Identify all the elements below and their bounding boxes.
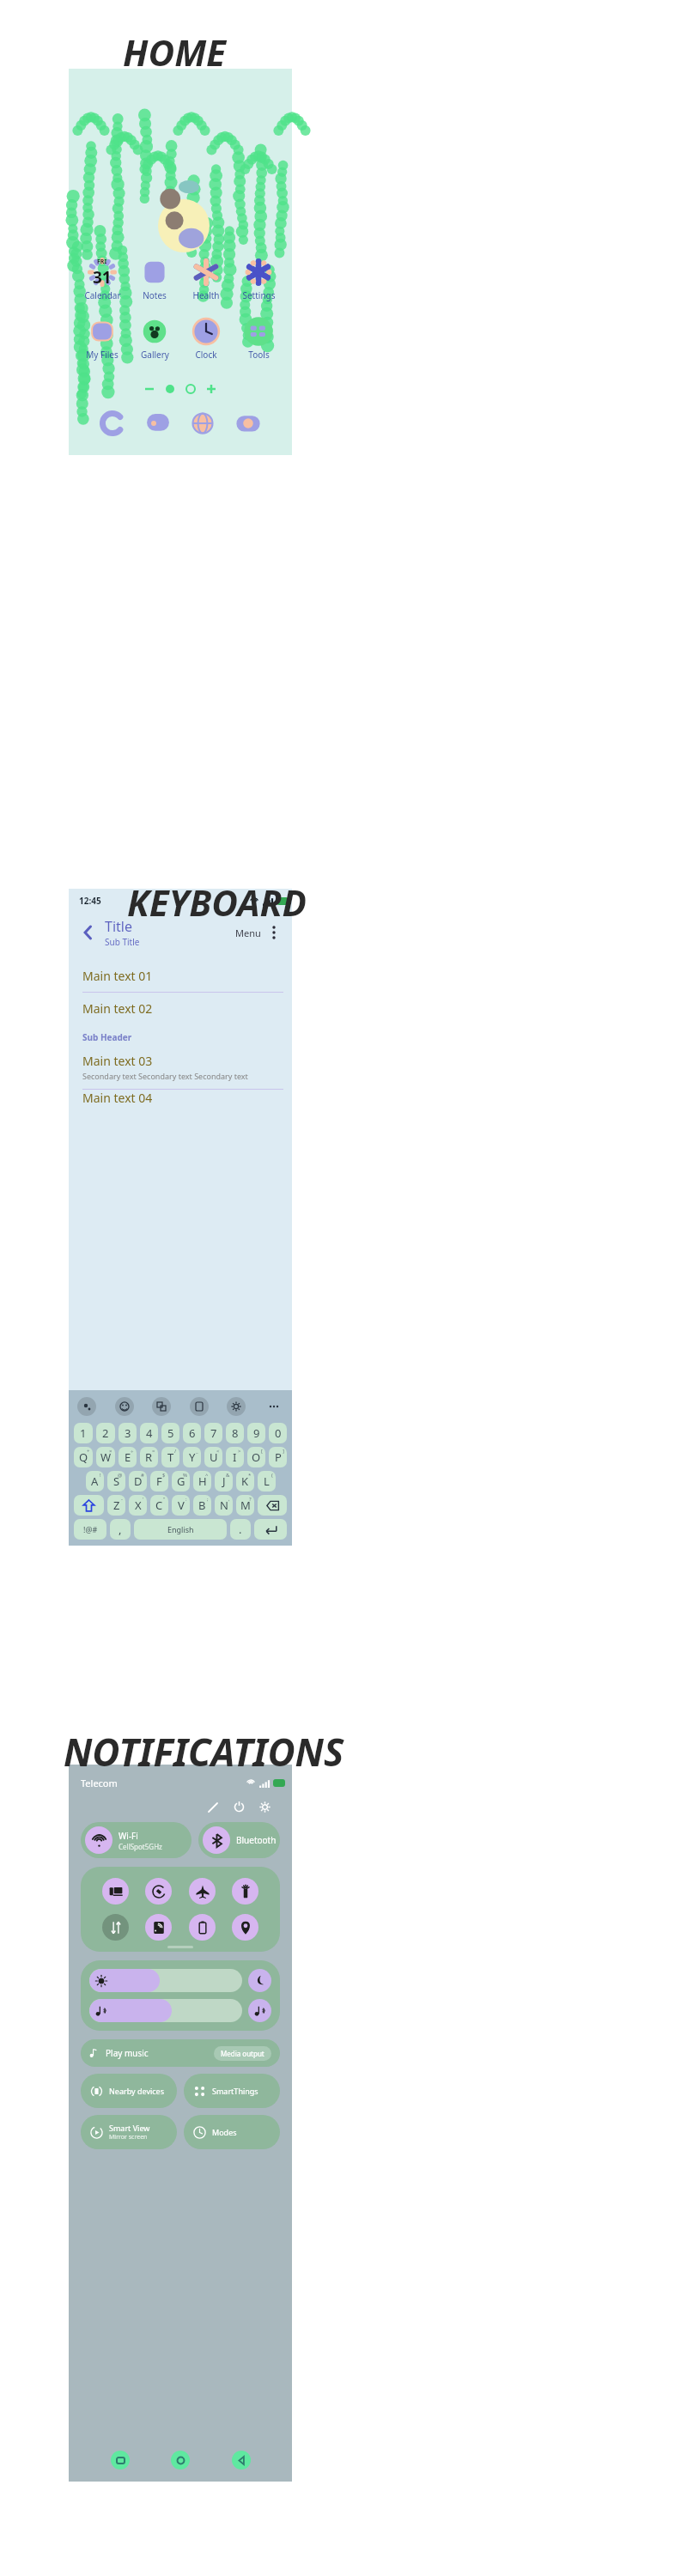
- button[interactable]: <: [204, 1447, 222, 1467]
- button[interactable]: %: [172, 1471, 190, 1492]
- button[interactable]: more: [264, 1397, 283, 1416]
- button[interactable]: [: [247, 1447, 265, 1467]
- staticText: Tools: [248, 349, 270, 361]
- staticText: 2: [102, 1425, 109, 1441]
- button[interactable]: 2: [96, 1423, 115, 1443]
- button[interactable]: 5: [161, 1423, 179, 1443]
- button[interactable]: Back: [232, 2451, 251, 2470]
- button[interactable]: Nearby devices: [81, 2074, 177, 2108]
- button[interactable]: devices: [102, 1878, 129, 1905]
- button[interactable]: Edit: [203, 1796, 223, 1817]
- button[interactable]: /: [161, 1447, 179, 1467]
- button[interactable]: Main text 03: [69, 1045, 292, 1090]
- button[interactable]: 4: [140, 1423, 158, 1443]
- button[interactable]: translate: [152, 1397, 171, 1416]
- button[interactable]: 6: [183, 1423, 201, 1443]
- button[interactable]: 1: [74, 1423, 93, 1443]
- button[interactable]: Browser: [188, 409, 217, 438]
- button[interactable]: rotate: [145, 1878, 172, 1905]
- button[interactable]: =: [140, 1447, 158, 1467]
- staticText: Clock: [195, 349, 217, 361]
- button[interactable]: Health: [181, 258, 231, 301]
- button[interactable]: hotspot: [145, 1914, 172, 1941]
- button[interactable]: data: [102, 1914, 129, 1941]
- button[interactable]: volume: [89, 1999, 242, 2022]
- button[interactable]: &: [215, 1471, 233, 1492]
- button[interactable]: Power: [228, 1796, 249, 1817]
- button[interactable]: Recents: [111, 2451, 130, 2470]
- button[interactable]: -: [107, 1495, 125, 1516]
- button[interactable]: Clock: [181, 317, 231, 361]
- staticText: 31: [93, 266, 112, 287]
- button[interactable]: +: [74, 1447, 93, 1467]
- button[interactable]: Smart View: [81, 2115, 177, 2149]
- button[interactable]: 0: [269, 1423, 287, 1443]
- button[interactable]: (: [258, 1471, 276, 1492]
- button[interactable]: !: [86, 1471, 104, 1492]
- button[interactable]: Main text 01: [69, 960, 292, 993]
- button[interactable]: backspace: [258, 1495, 287, 1516]
- button[interactable]: ?: [236, 1495, 254, 1516]
- button[interactable]: ^: [193, 1471, 211, 1492]
- button[interactable]: shift: [74, 1495, 104, 1516]
- button[interactable]: Messages: [143, 409, 173, 438]
- staticText: 8: [232, 1425, 239, 1441]
- button[interactable]: @: [107, 1471, 125, 1492]
- button[interactable]: Menu: [232, 923, 264, 943]
- button[interactable]: 3: [119, 1423, 137, 1443]
- button[interactable]: Back: [77, 921, 100, 944]
- button[interactable]: Phone: [98, 409, 127, 438]
- staticText: O: [252, 1449, 261, 1465]
- button[interactable]: #: [129, 1471, 147, 1492]
- button[interactable]: 8: [226, 1423, 244, 1443]
- button[interactable]: battery: [189, 1914, 216, 1941]
- button[interactable]: Settings: [254, 1796, 275, 1817]
- button[interactable]: Media output: [214, 2046, 271, 2061]
- button[interactable]: $: [150, 1471, 168, 1492]
- button[interactable]: >: [226, 1447, 244, 1467]
- button[interactable]: Camera: [234, 409, 263, 438]
- button[interactable]: sparkle: [77, 1397, 96, 1416]
- button[interactable]: ,: [110, 1519, 131, 1540]
- button[interactable]: settings: [227, 1397, 246, 1416]
- button[interactable]: sound: [248, 1999, 271, 2022]
- button[interactable]: emoji: [115, 1397, 134, 1416]
- button[interactable]: ÷: [119, 1447, 137, 1467]
- button[interactable]: Main text 02: [69, 993, 292, 1024]
- button[interactable]: Play music: [81, 2039, 280, 2067]
- button[interactable]: SmartThings: [184, 2074, 280, 2108]
- button[interactable]: Gallery: [130, 317, 179, 361]
- button[interactable]: Bluetooth: [198, 1822, 280, 1858]
- button[interactable]: Wi-Fi: [81, 1822, 192, 1858]
- button[interactable]: .: [230, 1519, 251, 1540]
- button[interactable]: ": [150, 1495, 168, 1516]
- button[interactable]: flash: [232, 1878, 258, 1905]
- button[interactable]: clipboard: [190, 1397, 209, 1416]
- button[interactable]: FRI: [77, 258, 127, 301]
- button[interactable]: _: [183, 1447, 201, 1467]
- button[interactable]: :: [172, 1495, 190, 1516]
- button[interactable]: night: [248, 1969, 271, 1992]
- button[interactable]: 9: [247, 1423, 265, 1443]
- button[interactable]: Home: [171, 2451, 190, 2470]
- button[interactable]: Tools: [234, 317, 283, 361]
- button[interactable]: ,: [215, 1495, 233, 1516]
- button[interactable]: ;: [193, 1495, 211, 1516]
- button[interactable]: ]: [269, 1447, 287, 1467]
- button[interactable]: Settings: [234, 258, 283, 301]
- button[interactable]: enter: [254, 1519, 287, 1540]
- button[interactable]: *: [236, 1471, 254, 1492]
- button[interactable]: !@#: [74, 1519, 106, 1540]
- button[interactable]: ×: [96, 1447, 115, 1467]
- button[interactable]: Notes: [130, 258, 179, 301]
- staticText: 9: [253, 1425, 260, 1441]
- button[interactable]: airplane: [189, 1878, 216, 1905]
- button[interactable]: My Files: [77, 317, 127, 361]
- button[interactable]: Modes: [184, 2115, 280, 2149]
- button[interactable]: location: [232, 1914, 258, 1941]
- button[interactable]: 7: [204, 1423, 222, 1443]
- button[interactable]: ': [129, 1495, 147, 1516]
- button[interactable]: English: [134, 1519, 227, 1540]
- button[interactable]: More options: [264, 923, 283, 942]
- button[interactable]: brightness: [89, 1969, 242, 1992]
